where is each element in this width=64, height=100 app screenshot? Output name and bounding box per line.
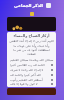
button[interactable] bbox=[7, 88, 56, 95]
staticText: لا حول ولا قوة إلا بالله bbox=[10, 82, 38, 86]
button[interactable]: لا حول ولا قوة إلا بالله bbox=[9, 82, 54, 86]
staticText: لا إله إلا الله وحده لا شريك bbox=[10, 68, 44, 72]
button[interactable] bbox=[7, 17, 56, 31]
staticText: اللهم أنت ربي لا إله إلا أنت خلقتني وأنا… bbox=[9, 39, 54, 55]
staticText: الحمد لله رب العالمين كثيرا bbox=[10, 63, 45, 67]
staticText: سبحان الله وبحمده سبحان العظيم bbox=[10, 58, 54, 62]
button[interactable]: الله أكبر كبيرا والحمد لله bbox=[9, 72, 54, 77]
button[interactable]: Back bbox=[46, 3, 51, 8]
staticText: أستغفر الله العظيم وأتوب bbox=[10, 78, 43, 82]
staticText: الذكر الجماعي bbox=[14, 3, 44, 9]
button[interactable]: الحمد لله رب العالمين كثيرا bbox=[9, 62, 54, 67]
staticText: أذكار الصباح والمساء bbox=[13, 33, 50, 38]
button[interactable]: سبحان الله وبحمده سبحان العظيم bbox=[9, 57, 54, 62]
staticText: الله أكبر كبيرا والحمد لله bbox=[10, 73, 41, 77]
button[interactable]: لا إله إلا الله وحده لا شريك bbox=[9, 67, 54, 72]
button[interactable]: أستغفر الله العظيم وأتوب bbox=[9, 77, 54, 82]
